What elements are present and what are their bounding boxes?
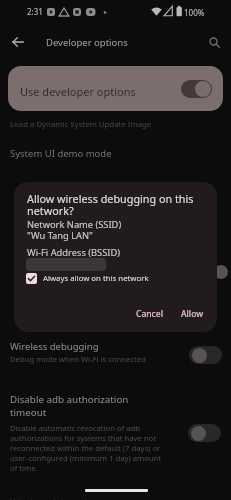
staticText: Load a Dynamic System Update Image: [10, 119, 152, 130]
staticText: Disable adb authorization timeout: [10, 393, 129, 418]
staticText: Wireless debugging: [10, 340, 99, 353]
staticText: Allow: [181, 308, 204, 320]
staticText: Wi-Fi Address (BSSID): [27, 246, 121, 259]
staticText: Allow wireless debugging on this network…: [27, 191, 194, 218]
staticText: Developer options: [46, 36, 128, 49]
staticText: Wireless debugging: [10, 496, 99, 500]
staticText: Use developer options: [20, 84, 136, 99]
button[interactable]: Allow: [171, 302, 213, 326]
button[interactable]: Wireless debugging: [0, 334, 231, 368]
staticText: Cancel: [136, 308, 163, 320]
staticText: System UI demo mode: [10, 147, 112, 160]
staticText: Always allow on this network: [43, 273, 149, 284]
staticText: 100%: [184, 7, 205, 18]
button[interactable]: Use developer options: [8, 66, 223, 111]
button[interactable]: Cancel: [127, 302, 171, 326]
staticText: Debug mode when Wi-Fi is connected: [10, 354, 146, 364]
staticText: Network Name (SSID) "Wu Tang LAN": [27, 218, 122, 242]
staticText: Disable automatic revocation of adb auth…: [10, 423, 162, 473]
button[interactable]: [203, 31, 227, 55]
button[interactable]: [6, 30, 30, 54]
staticText: 2:31: [27, 6, 43, 17]
button[interactable]: Disable adb authorization timeout: [0, 388, 231, 476]
button[interactable]: Always allow on this network: [26, 273, 149, 284]
